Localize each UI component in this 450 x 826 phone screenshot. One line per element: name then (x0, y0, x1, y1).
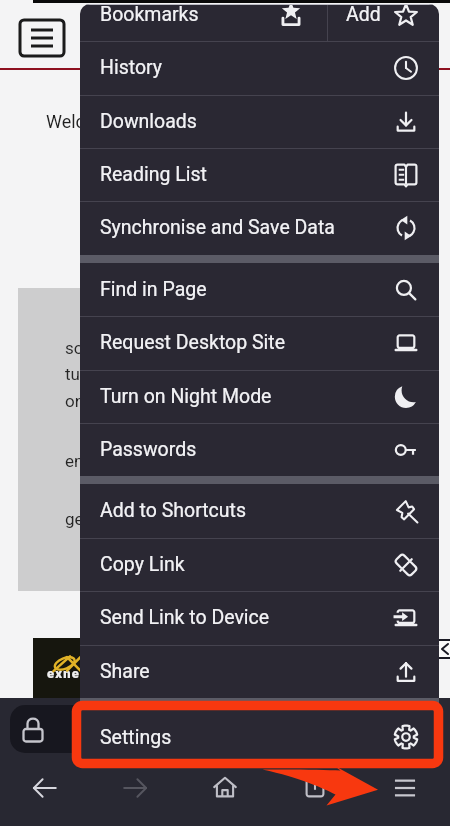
staticText: Turn on Night Mode (100, 385, 272, 408)
staticText: Passwords (100, 438, 197, 461)
staticText: Welcome (46, 111, 121, 132)
button[interactable]: Settings (80, 706, 439, 768)
button[interactable]: Forward (90, 760, 180, 816)
button[interactable]: Copy Link (80, 538, 439, 591)
button[interactable]: Home (180, 760, 270, 816)
button[interactable]: History (80, 41, 439, 94)
button[interactable]: Reading List (80, 148, 439, 201)
staticText: Downloads (100, 110, 197, 133)
button[interactable]: Tabs (270, 760, 360, 816)
button[interactable]: Bookmarks (80, 4, 327, 41)
button[interactable]: Passwords (80, 423, 439, 476)
button[interactable]: Send Link to Device (80, 591, 439, 644)
button[interactable]: Downloads (80, 95, 439, 148)
staticText: tutorials (65, 364, 82, 384)
button[interactable]: Menu (360, 760, 450, 816)
staticText: Find in Page (100, 278, 207, 301)
staticText: Reading List (100, 163, 207, 186)
staticText: Synchronise and Save Data (100, 216, 335, 239)
button[interactable]: Back (0, 760, 90, 816)
button[interactable]: Add to Shortcuts (80, 484, 439, 537)
staticText: Add (346, 4, 381, 26)
button[interactable]: Synchronise and Save Data (80, 201, 439, 254)
staticText: email (65, 451, 82, 471)
button[interactable]: Request Desktop Site (80, 316, 439, 369)
staticText: Settings (100, 726, 172, 749)
button[interactable]: Find in Page (80, 263, 439, 316)
staticText: onboard (65, 391, 82, 411)
button[interactable]: Turn on Night Mode (80, 370, 439, 423)
staticText: exness (47, 666, 96, 681)
staticText: some (65, 338, 82, 358)
staticText: Request Desktop Site (100, 331, 286, 354)
staticText: Add to Shortcuts (100, 499, 247, 522)
staticText: Copy Link (100, 553, 185, 576)
staticText: get going (65, 509, 82, 529)
button[interactable]: Share (80, 645, 439, 698)
button[interactable]: Address bar (10, 705, 382, 753)
staticText: Send Link to Device (100, 606, 270, 629)
staticText: History (100, 56, 163, 79)
button[interactable]: Add (328, 4, 439, 41)
staticText: Bookmarks (100, 4, 199, 26)
staticText: Share (100, 660, 150, 683)
